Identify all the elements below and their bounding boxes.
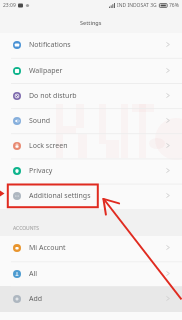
staticText: Lock screen [29, 141, 68, 151]
button[interactable]: All [0, 261, 182, 286]
button[interactable]: Mi Account [0, 235, 182, 260]
staticText: Additional settings [29, 191, 91, 201]
staticText: Settings [80, 19, 102, 26]
button[interactable]: Additional settings [0, 183, 182, 208]
staticText: Sound [29, 116, 51, 126]
button[interactable]: Wallpaper [0, 58, 182, 83]
staticText: Add [29, 294, 43, 304]
button[interactable]: Add [0, 286, 182, 311]
staticText: ACCOUNTS [13, 225, 40, 232]
staticText: All [29, 269, 38, 279]
staticText: Mi Account [29, 243, 66, 253]
staticText: 23:09 [3, 2, 16, 9]
staticText: 76% [169, 2, 179, 9]
staticText: Do not disturb [29, 91, 77, 101]
button[interactable]: Lock screen [0, 133, 182, 158]
button[interactable]: Do not disturb [0, 83, 182, 108]
staticText: Privacy [29, 166, 53, 176]
staticText: IND INDOSAT 3G [117, 2, 157, 9]
button[interactable]: Notifications [0, 32, 182, 57]
button[interactable]: Sound [0, 108, 182, 133]
staticText: Notifications [29, 40, 71, 50]
staticText: Wallpaper [29, 66, 63, 76]
button[interactable]: Privacy [0, 158, 182, 183]
